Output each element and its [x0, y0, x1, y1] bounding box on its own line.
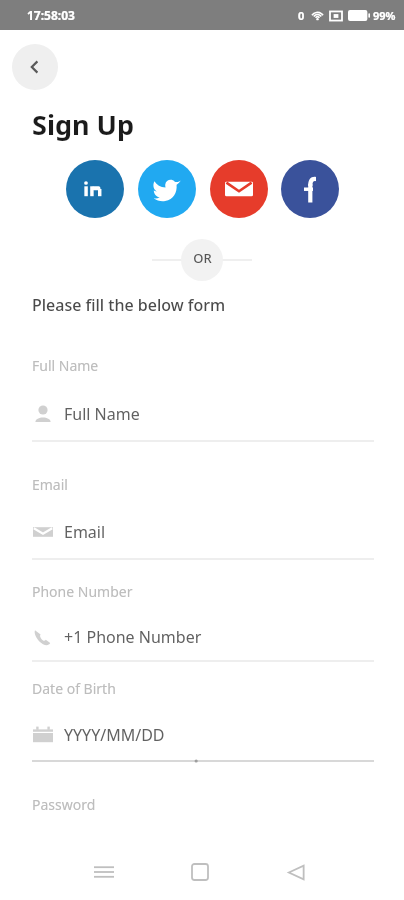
- button[interactable]: LinkedIn sign up: [66, 160, 124, 218]
- staticText: Email: [64, 521, 106, 543]
- staticText: +1 Phone Number: [64, 626, 202, 648]
- staticText: 0: [298, 8, 305, 23]
- button[interactable]: Recents: [78, 846, 130, 898]
- staticText: Email: [32, 475, 68, 494]
- button[interactable]: Back: [12, 44, 58, 90]
- button[interactable]: Email: [32, 506, 374, 558]
- button[interactable]: Twitter sign up: [138, 160, 196, 218]
- staticText: OR: [193, 249, 212, 267]
- staticText: Please fill the below form: [32, 294, 226, 316]
- staticText: Date of Birth: [32, 679, 116, 698]
- staticText: Full Name: [64, 403, 140, 425]
- button[interactable]: +1 Phone Number: [32, 613, 374, 660]
- button[interactable]: Email sign up: [210, 160, 268, 218]
- button[interactable]: Facebook sign up: [281, 160, 339, 218]
- staticText: 99%: [373, 8, 396, 23]
- button[interactable]: YYYY/MM/DD: [32, 710, 374, 760]
- staticText: Full Name: [32, 356, 99, 375]
- button[interactable]: Full Name: [32, 387, 374, 440]
- staticText: Password: [32, 795, 96, 814]
- staticText: Sign Up: [32, 106, 135, 143]
- button[interactable]: Home: [174, 846, 226, 898]
- staticText: Phone Number: [32, 582, 133, 601]
- button[interactable]: Back: [270, 846, 322, 898]
- staticText: 17:58:03: [27, 7, 75, 23]
- staticText: YYYY/MM/DD: [64, 724, 165, 746]
